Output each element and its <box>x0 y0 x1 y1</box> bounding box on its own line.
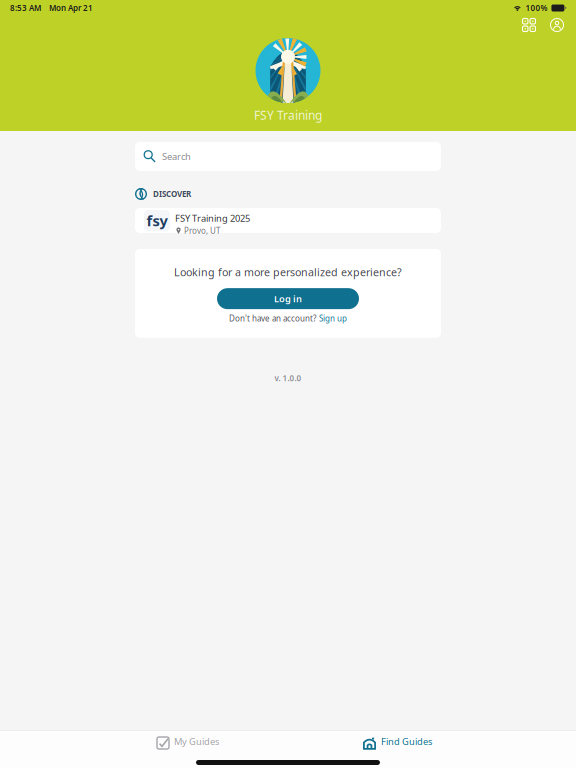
staticText: v. 1.0.0 <box>274 373 301 383</box>
staticText: Find Guides <box>381 735 432 748</box>
button[interactable]: Sign up <box>319 313 347 324</box>
button[interactable]: Search <box>135 142 441 171</box>
staticText: Search <box>162 150 191 163</box>
button[interactable]: My Guides <box>149 729 227 753</box>
staticText: Don't have an account? <box>229 313 316 324</box>
staticText: Looking for a more personalized experien… <box>174 265 402 279</box>
staticText: FSY Training 2025 <box>175 212 250 224</box>
staticText: FSY Training <box>254 107 322 123</box>
staticText: My Guides <box>174 735 219 748</box>
staticText: Mon Apr 21 <box>49 3 93 13</box>
button[interactable]: Log in <box>217 288 359 309</box>
staticText: DISCOVER <box>153 189 191 199</box>
button[interactable]: Account <box>544 14 570 36</box>
staticText: Provo, UT <box>184 225 220 236</box>
staticText: 100% <box>525 3 547 13</box>
button[interactable]: Scan QR code <box>516 14 542 36</box>
button[interactable]: Find Guides <box>355 729 440 753</box>
staticText: fsy <box>146 211 167 230</box>
staticText: Log in <box>274 292 302 305</box>
button[interactable]: fsy <box>135 208 441 233</box>
staticText: Sign up <box>319 313 347 324</box>
staticText: 8:53 AM <box>10 3 41 13</box>
